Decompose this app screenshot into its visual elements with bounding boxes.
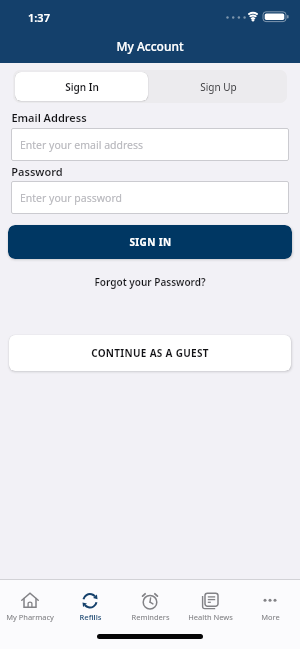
button[interactable]: Enter your password — [11, 181, 289, 214]
button[interactable]: SIGN IN — [8, 225, 292, 259]
button[interactable]: More — [240, 590, 300, 622]
staticText: Email Address — [11, 110, 87, 125]
button[interactable]: Sign Up — [150, 70, 287, 103]
staticText: Refills — [79, 612, 102, 622]
staticText: Health News — [188, 612, 233, 622]
staticText: More — [261, 612, 280, 622]
staticText: Enter your email address — [20, 138, 144, 152]
button[interactable]: Health News — [180, 590, 240, 622]
staticText: Password — [11, 164, 63, 179]
button[interactable]: Reminders — [120, 590, 180, 622]
button[interactable]: Forgot your Password? — [94, 275, 206, 289]
button[interactable]: Refills — [60, 590, 120, 622]
button[interactable]: My Pharmacy — [0, 590, 60, 622]
staticText: My Pharmacy — [6, 612, 54, 622]
button[interactable]: CONTINUE AS A GUEST — [9, 335, 291, 371]
staticText: 1:37 — [28, 10, 50, 25]
staticText: Reminders — [131, 612, 170, 622]
button[interactable]: Enter your email address — [11, 128, 289, 161]
staticText: SIGN IN — [129, 235, 172, 249]
staticText: My Account — [116, 38, 184, 54]
staticText: Sign In — [65, 80, 99, 94]
staticText: Forgot your Password? — [94, 275, 206, 289]
staticText: CONTINUE AS A GUEST — [91, 346, 209, 360]
button[interactable]: Sign In — [15, 72, 148, 101]
staticText: Sign Up — [200, 80, 237, 94]
staticText: Enter your password — [20, 191, 122, 205]
